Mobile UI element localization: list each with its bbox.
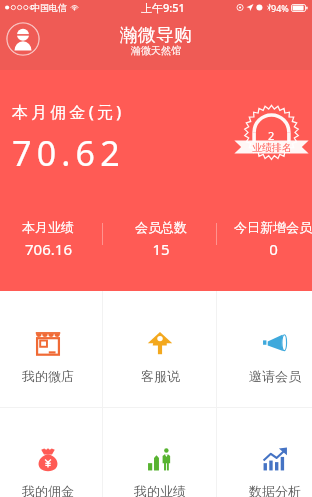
staticText: 数据分析 [249, 483, 301, 497]
staticText: 中国电信 [31, 2, 67, 13]
button[interactable]: 我的佣金 [0, 408, 100, 497]
button[interactable]: 今日新增会员 [228, 215, 312, 263]
staticText: 我的业绩 [134, 483, 186, 497]
staticText: 我的微店 [22, 368, 74, 384]
staticText: 70.62 [12, 130, 125, 176]
staticText: 瀚微导购 [120, 24, 192, 47]
staticText: 上午9:51 [141, 0, 185, 15]
staticText: 15 [152, 239, 170, 259]
button[interactable]: 本月业绩 [3, 215, 93, 263]
staticText: 706.16 [25, 239, 72, 259]
staticText: 邀请会员 [249, 368, 301, 384]
staticText: 会员总数 [135, 219, 187, 235]
staticText: 0 [269, 239, 278, 259]
staticText: 瀚微天然馆 [131, 44, 181, 57]
staticText: 2 [268, 128, 275, 143]
staticText: 本月佣金(元) [12, 101, 125, 123]
button[interactable]: 个人中心 [6, 22, 40, 56]
button[interactable]: 邀请会员 [223, 291, 312, 407]
button[interactable]: 数据分析 [223, 408, 312, 497]
button[interactable]: 我的微店 [0, 291, 100, 407]
button[interactable]: 会员总数 [116, 215, 206, 263]
button[interactable]: 客服说 [108, 291, 212, 407]
button[interactable]: 我的业绩 [108, 408, 212, 497]
button[interactable]: 业绩排名 [234, 106, 309, 164]
staticText: 本月业绩 [22, 219, 74, 235]
staticText: 今日新增会员 [234, 219, 312, 235]
staticText: 业绩排名 [252, 141, 292, 154]
staticText: 我的佣金 [22, 483, 74, 497]
staticText: 94% [271, 2, 289, 14]
staticText: 客服说 [141, 368, 180, 384]
